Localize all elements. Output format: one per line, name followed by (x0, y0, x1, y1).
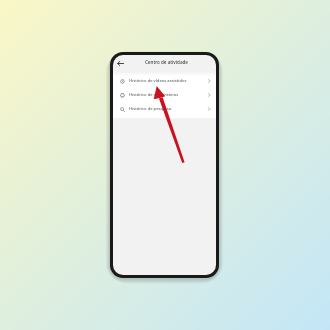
staticText: Histórico de pesquisa (129, 106, 172, 112)
button[interactable]: Histórico de vídeos assistidos (113, 74, 216, 88)
button[interactable]: Histórico de pesquisa (113, 102, 216, 116)
button[interactable]: Histórico de comentários (113, 88, 216, 102)
staticText: Histórico de comentários (129, 92, 179, 98)
button[interactable]: Voltar (117, 60, 124, 67)
staticText: Centro de atividade (145, 59, 188, 65)
staticText: Histórico de vídeos assistidos (129, 78, 187, 84)
